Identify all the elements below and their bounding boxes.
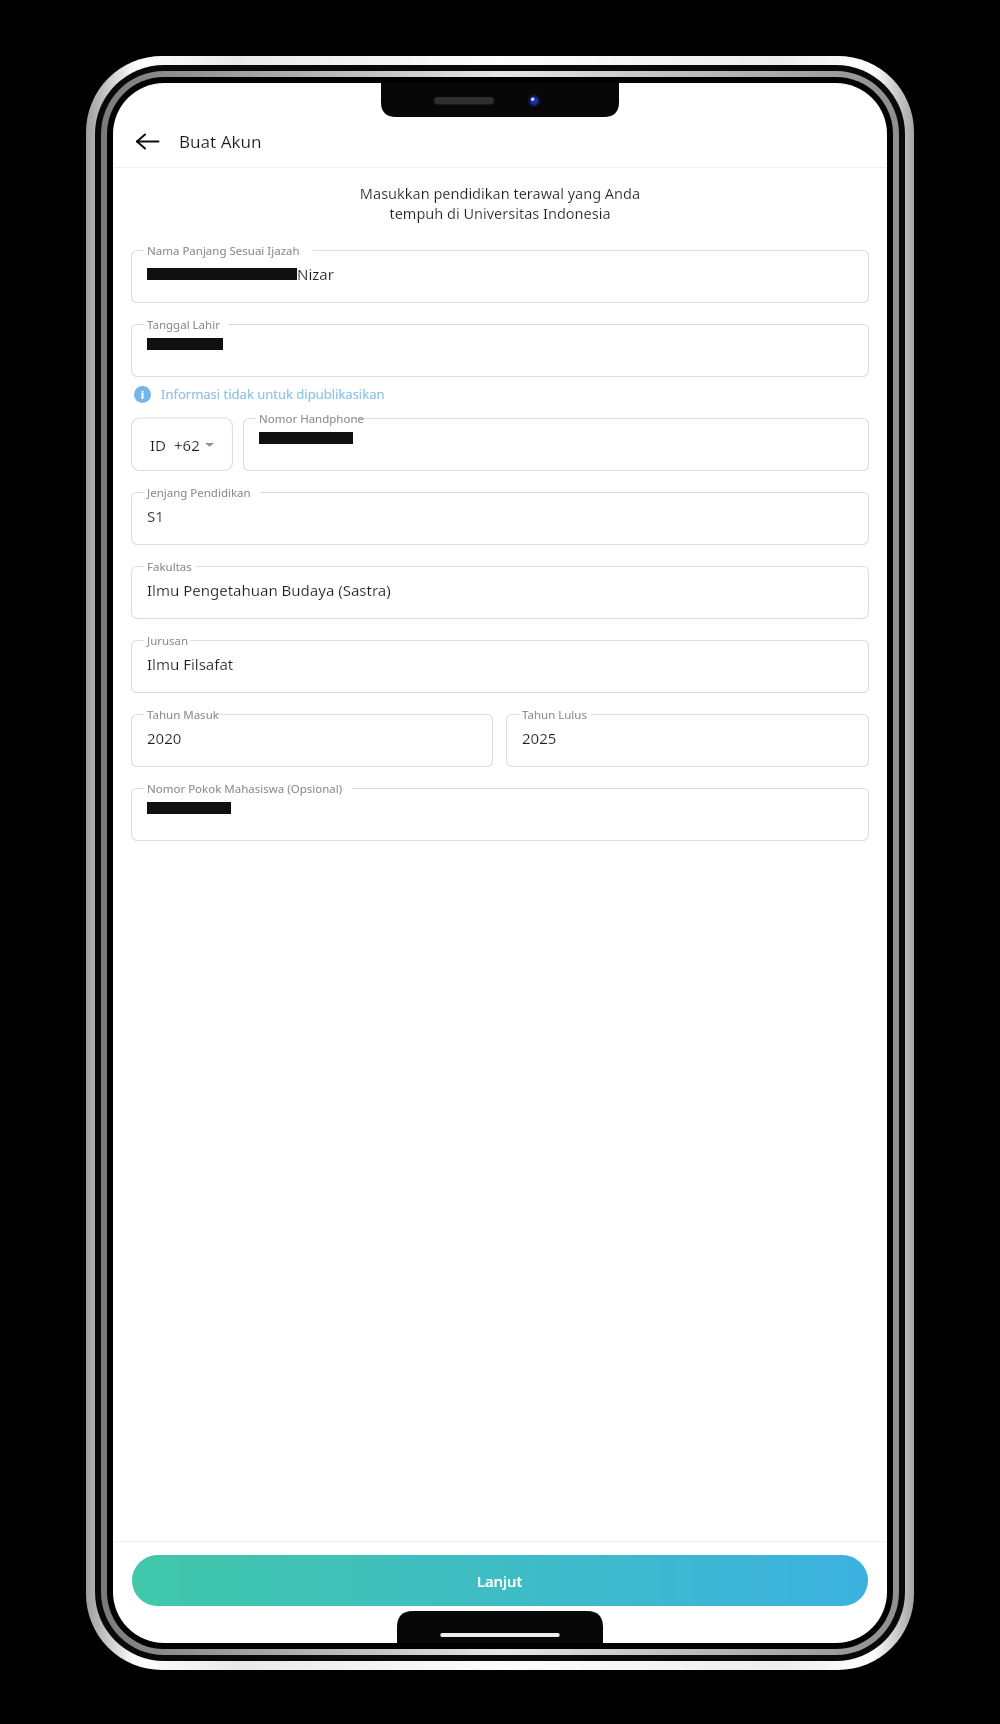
- staticText: Ilmu Pengetahuan Budaya (Sastra): [147, 580, 391, 600]
- button[interactable]: i: [131, 385, 869, 403]
- staticText: Tahun Lulus: [522, 707, 587, 723]
- staticText: S1: [147, 506, 164, 526]
- button[interactable]: Tanggal Lahir: [131, 317, 869, 377]
- staticText: Ilmu Filsafat: [147, 654, 234, 674]
- staticText: Nama Panjang Sesuai Ijazah: [147, 243, 300, 259]
- staticText: Masukkan pendidikan terawal yang Anda te…: [131, 183, 869, 224]
- button[interactable]: ID: [131, 411, 233, 471]
- staticText: Tanggal Lahir: [147, 317, 220, 333]
- staticText: 2020: [147, 728, 182, 748]
- button[interactable]: Jenjang Pendidikan: [131, 485, 869, 545]
- button[interactable]: Back: [125, 119, 169, 163]
- staticText: Nomor Pokok Mahasiswa (Opsional): [147, 781, 343, 797]
- staticText: Tahun Masuk: [147, 707, 219, 723]
- staticText: Lanjut: [477, 1571, 523, 1591]
- staticText: Nomor Handphone: [259, 411, 365, 427]
- button[interactable]: Tahun Masuk: [131, 707, 493, 767]
- button[interactable]: Lanjut: [132, 1555, 868, 1606]
- staticText: ID: [150, 435, 167, 455]
- staticText: Jurusan: [147, 633, 189, 649]
- staticText: +62: [174, 435, 200, 455]
- staticText: Nizar: [297, 264, 334, 284]
- button[interactable]: Tahun Lulus: [506, 707, 869, 767]
- staticText: Fakultas: [147, 559, 192, 575]
- button[interactable]: Nama Panjang Sesuai Ijazah: [131, 243, 869, 303]
- staticText: Buat Akun: [179, 130, 262, 153]
- staticText: Jenjang Pendidikan: [147, 485, 251, 501]
- button[interactable]: Jurusan: [131, 633, 869, 693]
- button[interactable]: Nomor Pokok Mahasiswa (Opsional): [131, 781, 869, 841]
- staticText: i: [141, 388, 144, 402]
- button[interactable]: Fakultas: [131, 559, 869, 619]
- staticText: Informasi tidak untuk dipublikasikan: [161, 385, 385, 403]
- button[interactable]: Nomor Handphone: [243, 411, 869, 471]
- staticText: 2025: [522, 728, 557, 748]
